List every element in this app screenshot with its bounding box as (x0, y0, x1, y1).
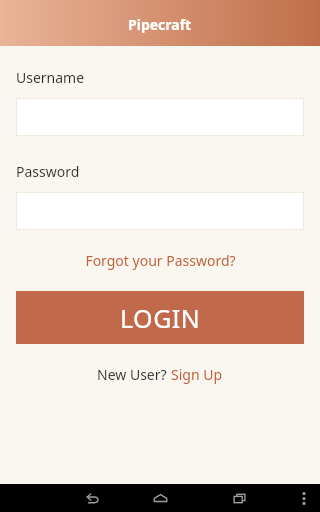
button[interactable]: Sign Up (171, 365, 223, 384)
button[interactable] (16, 98, 304, 136)
button[interactable]: Back (80, 486, 104, 510)
button[interactable] (16, 192, 304, 230)
staticText: Pipecraft (128, 15, 192, 34)
staticText: Username (16, 68, 85, 87)
staticText: Sign Up (171, 365, 223, 384)
button[interactable]: LOGIN (16, 291, 304, 344)
button[interactable]: Forgot your Password? (0, 247, 320, 274)
staticText: Forgot your Password? (85, 251, 236, 270)
staticText: New User? (97, 365, 171, 384)
staticText: Password (16, 162, 80, 181)
button[interactable]: Recent apps (227, 486, 251, 510)
button[interactable]: More options (292, 486, 316, 510)
button[interactable]: Home (148, 486, 172, 510)
staticText: LOGIN (120, 301, 201, 335)
